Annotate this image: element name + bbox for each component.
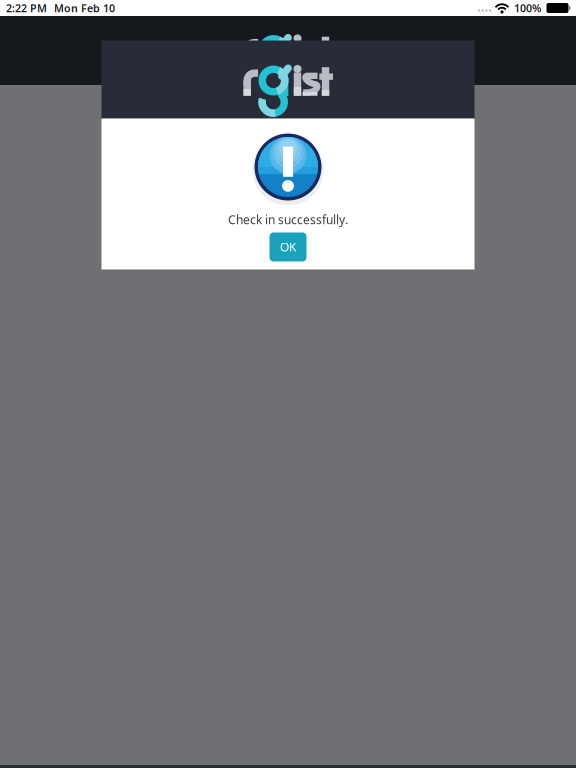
staticText: Mon Feb 10 [54,1,115,15]
staticText: Check in successfully. [228,211,348,227]
staticText: 100% [514,1,541,15]
staticText: 2:22 PM [6,1,47,15]
staticText: OK [280,239,296,255]
button[interactable]: OK [269,232,306,261]
